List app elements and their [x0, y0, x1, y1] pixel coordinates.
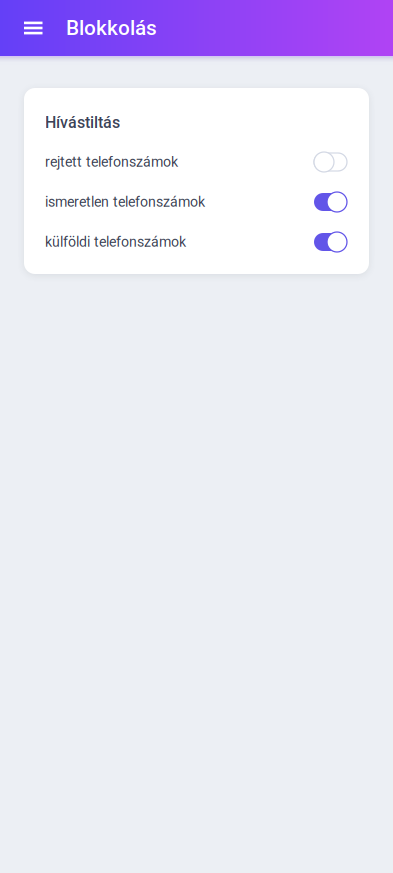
staticText: külföldi telefonszámok: [45, 234, 186, 250]
button[interactable]: külföldi telefonszámok: [24, 222, 369, 262]
button[interactable]: ismeretlen telefonszámok: [24, 182, 369, 222]
button[interactable]: rejtett telefonszámok: [24, 142, 369, 182]
staticText: rejtett telefonszámok: [45, 154, 178, 170]
button[interactable]: Menu: [0, 0, 66, 56]
staticText: Hívástiltás: [45, 113, 120, 132]
staticText: Blokkolás: [66, 16, 157, 40]
staticText: ismeretlen telefonszámok: [45, 194, 205, 210]
